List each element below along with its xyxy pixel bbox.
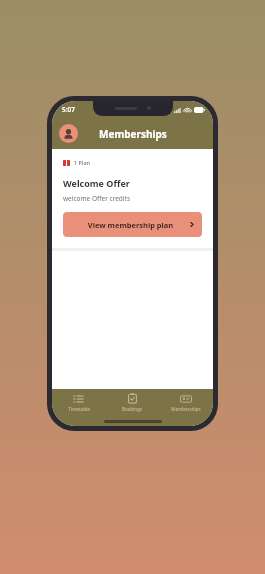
button[interactable]: Memberships	[159, 389, 213, 416]
staticText: Welcome Offer	[63, 177, 130, 189]
staticText: Timetable	[68, 406, 90, 412]
staticText: Memberships	[171, 406, 201, 412]
staticText: 1 Plan	[74, 159, 91, 166]
staticText: Bookings	[122, 406, 142, 412]
staticText: 5:07	[62, 105, 75, 114]
staticText: View membership plan	[71, 220, 190, 230]
staticText: welcome Offer credits	[63, 194, 131, 203]
button[interactable]: Profile	[59, 124, 78, 143]
button[interactable]: Bookings	[105, 389, 159, 416]
button[interactable]: View membership plan	[63, 212, 202, 237]
button[interactable]: Timetable	[52, 389, 105, 416]
staticText: Memberships	[99, 127, 167, 141]
